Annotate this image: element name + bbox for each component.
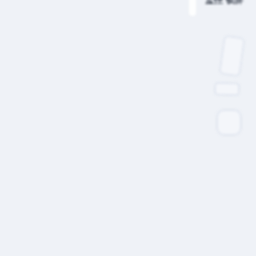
button[interactable]: Button <box>214 82 240 96</box>
staticText: 监控 锁屏 <box>205 0 244 5</box>
button[interactable]: Card <box>218 35 246 77</box>
button[interactable]: Tile <box>216 109 242 136</box>
